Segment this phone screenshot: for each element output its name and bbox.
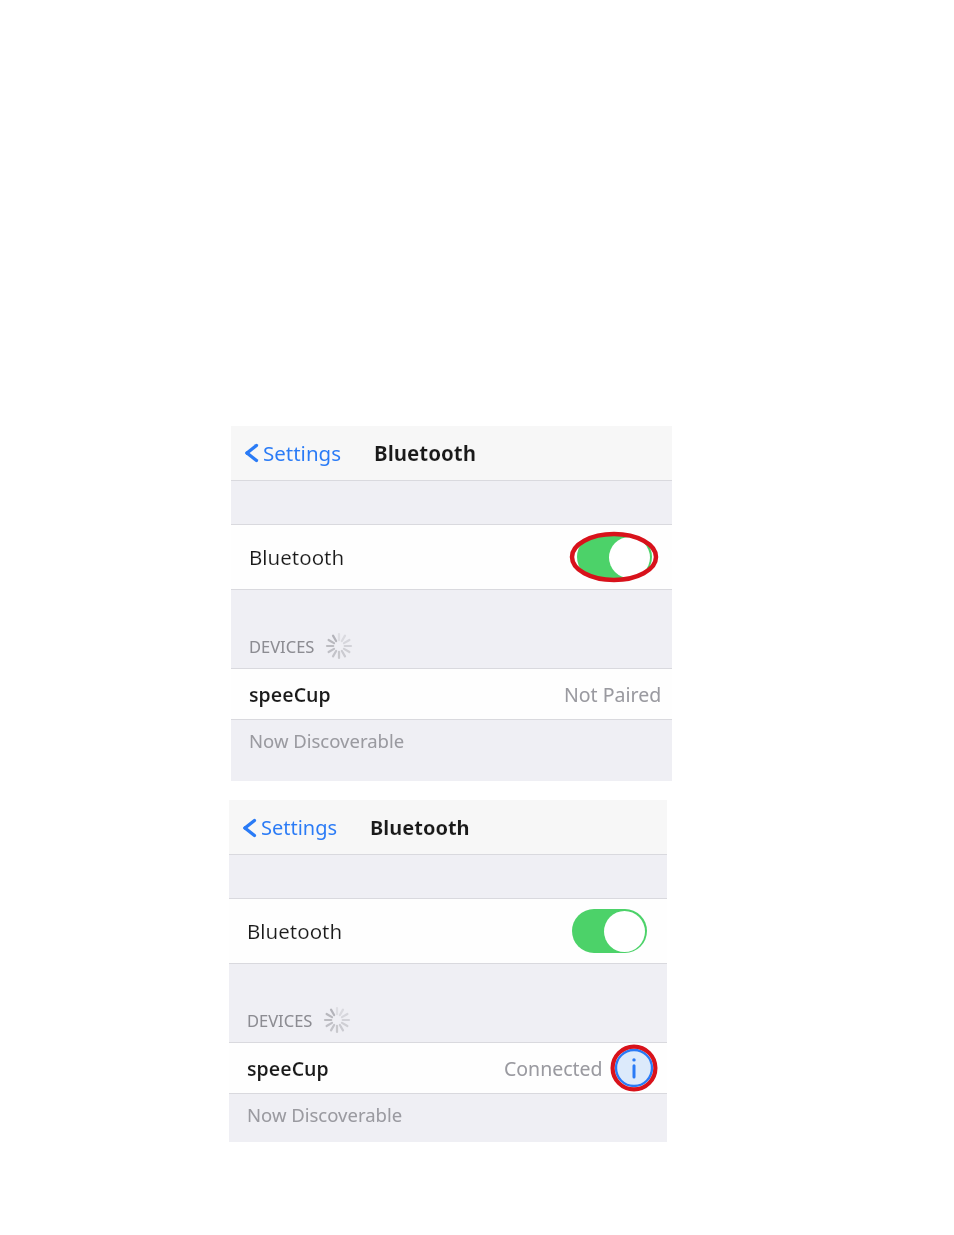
button[interactable]: Bluetooth on [565,905,653,957]
staticText: Bluetooth [370,814,470,841]
staticText: Not Paired [564,681,662,708]
staticText: speeCup [249,681,331,708]
button[interactable]: Settings [231,439,350,467]
staticText: speeCup [247,1055,329,1082]
staticText: Connected [504,1055,603,1082]
staticText: Bluetooth [374,439,477,467]
staticText: Bluetooth [247,917,343,945]
staticText: Now Discoverable [247,1102,403,1127]
staticText: DEVICES [249,635,315,657]
button[interactable]: Bluetooth on [570,531,658,583]
staticText: Settings [261,814,338,841]
button[interactable]: Settings [229,814,346,841]
staticText: Bluetooth [249,543,345,571]
staticText: Now Discoverable [249,728,405,753]
button[interactable]: Device info [611,1045,657,1091]
button[interactable]: speeCup [231,669,672,719]
staticText: Settings [263,439,342,467]
staticText: DEVICES [247,1009,313,1031]
button[interactable]: Bluetooth [231,525,672,589]
button[interactable]: Bluetooth [229,899,667,963]
button[interactable]: speeCup [229,1043,667,1093]
